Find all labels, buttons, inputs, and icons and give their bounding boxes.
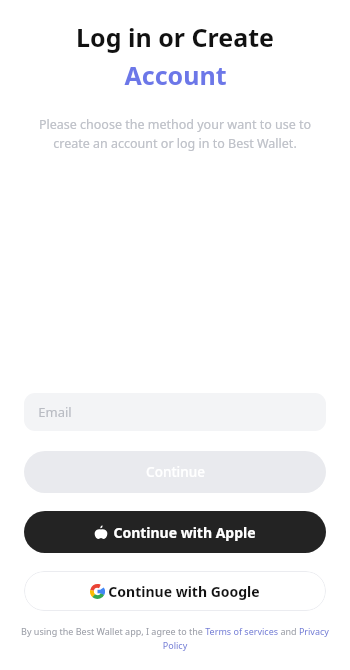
staticText: Log in or Create (76, 20, 274, 54)
staticText: Continue with Apple (113, 523, 256, 542)
button[interactable]: Continue with Apple (24, 511, 326, 553)
staticText: Account (124, 58, 227, 92)
button[interactable]: Continue (24, 451, 326, 493)
staticText: Please choose the method your want to us… (26, 116, 324, 152)
staticText: Email (38, 403, 72, 421)
staticText: Continue (146, 463, 205, 481)
button[interactable]: By using the Best Wallet app, I agree to… (18, 625, 332, 652)
button[interactable]: Continue with Google (24, 571, 326, 611)
staticText: Continue with Google (108, 582, 260, 601)
button[interactable]: Email (24, 393, 326, 431)
